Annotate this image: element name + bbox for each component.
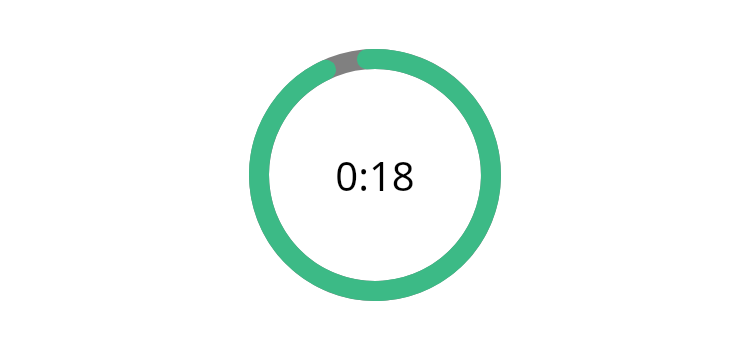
- staticText: 0:18: [335, 148, 415, 202]
- button[interactable]: Timer progress, 18 seconds remaining: [249, 49, 501, 301]
